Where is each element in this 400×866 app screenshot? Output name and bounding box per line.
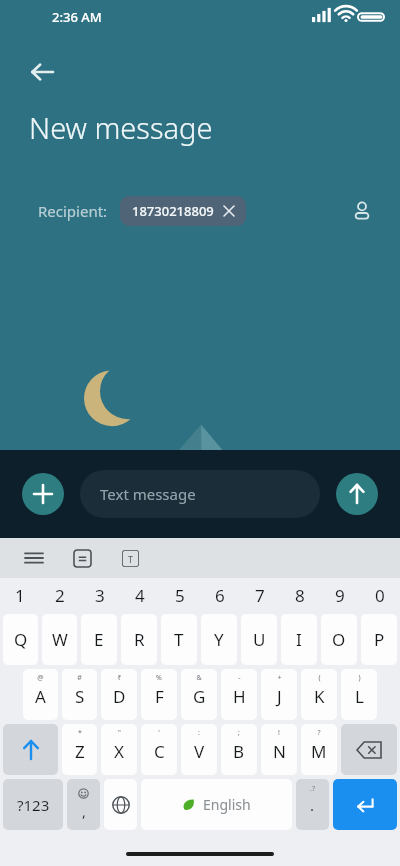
staticText: A xyxy=(35,685,46,708)
button[interactable]: U xyxy=(241,614,277,665)
button[interactable]: Text message xyxy=(80,470,320,518)
staticText: ; xyxy=(238,728,240,738)
staticText: ₹ xyxy=(117,673,122,683)
staticText: * xyxy=(78,728,82,738)
staticText: C xyxy=(154,740,165,763)
staticText: Q xyxy=(14,628,28,651)
staticText: Z xyxy=(75,740,85,763)
staticText: 0 xyxy=(375,584,385,607)
button[interactable]: Send xyxy=(336,473,378,515)
button[interactable]: O xyxy=(321,614,357,665)
staticText: 18730218809 xyxy=(132,202,214,220)
button[interactable]: E xyxy=(81,614,117,665)
button[interactable]: - xyxy=(221,669,257,720)
button[interactable]: P xyxy=(361,614,397,665)
staticText: J xyxy=(277,685,282,708)
button[interactable]: Back xyxy=(20,50,64,94)
staticText: New message xyxy=(29,108,213,147)
button[interactable]: Y xyxy=(201,614,237,665)
staticText: - xyxy=(238,673,241,683)
button[interactable]: R xyxy=(121,614,157,665)
button[interactable]: " xyxy=(101,724,137,775)
staticText: Y xyxy=(214,628,224,651)
button[interactable]: W xyxy=(42,614,77,665)
button[interactable]: 8 xyxy=(280,578,320,612)
button[interactable]: % xyxy=(141,669,177,720)
staticText: ' xyxy=(158,728,160,738)
button[interactable]: 7 xyxy=(240,578,280,612)
button[interactable]: 18730218809 xyxy=(120,196,246,226)
button[interactable]: Shift xyxy=(3,724,58,775)
button[interactable]: Backspace xyxy=(341,724,397,775)
staticText: English xyxy=(203,795,251,814)
staticText: Text message xyxy=(100,484,196,504)
staticText: T xyxy=(128,553,134,565)
staticText: 2 xyxy=(55,584,65,607)
button[interactable]: Menu xyxy=(18,542,50,574)
button[interactable]: Pick contact xyxy=(342,191,382,231)
button[interactable]: & xyxy=(181,669,217,720)
staticText: ? xyxy=(317,728,321,738)
staticText: : xyxy=(198,728,200,738)
staticText: ! xyxy=(278,728,280,738)
staticText: H xyxy=(233,685,246,708)
button[interactable]: ) xyxy=(341,669,377,720)
button[interactable]: ? xyxy=(301,724,337,775)
button[interactable]: # xyxy=(62,669,97,720)
button[interactable]: Enter xyxy=(333,779,397,830)
button[interactable]: 2 xyxy=(40,578,80,612)
staticText: . xyxy=(310,795,315,815)
button[interactable]: Text format xyxy=(114,542,146,574)
button[interactable]: 3 xyxy=(80,578,120,612)
staticText: W xyxy=(52,628,68,651)
button[interactable]: @ xyxy=(23,669,58,720)
button[interactable]: ₹ xyxy=(101,669,137,720)
staticText: , xyxy=(82,802,86,821)
button[interactable]: 4 xyxy=(120,578,160,612)
staticText: P xyxy=(374,628,385,651)
button[interactable]: ' xyxy=(141,724,177,775)
staticText: D xyxy=(113,685,126,708)
staticText: M xyxy=(311,740,327,763)
staticText: 3 xyxy=(95,584,105,607)
button[interactable]: T xyxy=(161,614,197,665)
button[interactable]: 6 xyxy=(200,578,240,612)
staticText: & xyxy=(196,673,202,683)
staticText: 5 xyxy=(175,584,185,607)
staticText: K xyxy=(314,685,325,708)
staticText: 7 xyxy=(255,584,265,607)
staticText: T xyxy=(174,628,184,651)
button[interactable]: ( xyxy=(301,669,337,720)
staticText: # xyxy=(77,673,82,683)
button[interactable]: * xyxy=(62,724,97,775)
button[interactable]: ?123 xyxy=(3,779,63,830)
button[interactable]: I xyxy=(281,614,317,665)
staticText: 8 xyxy=(295,584,305,607)
button[interactable]: ! xyxy=(261,724,297,775)
button[interactable]: Q xyxy=(3,614,38,665)
staticText: 2:36 AM xyxy=(52,8,102,26)
button[interactable]: 9 xyxy=(320,578,360,612)
staticText: O xyxy=(332,628,346,651)
staticText: N xyxy=(273,740,286,763)
staticText: U xyxy=(253,628,266,651)
button[interactable]: .? xyxy=(296,779,329,830)
button[interactable]: English xyxy=(141,779,292,830)
button[interactable]: 5 xyxy=(160,578,200,612)
button[interactable]: Change language xyxy=(104,779,137,830)
button[interactable]: Clipboard xyxy=(66,542,98,574)
button[interactable]: 0 xyxy=(360,578,400,612)
staticText: ) xyxy=(358,673,361,683)
staticText: Recipient: xyxy=(38,201,108,221)
staticText: 4 xyxy=(135,584,145,607)
button[interactable]: + xyxy=(261,669,297,720)
button[interactable]: : xyxy=(181,724,217,775)
button[interactable]: Add attachment xyxy=(22,473,64,515)
button[interactable]: ; xyxy=(221,724,257,775)
staticText: 9 xyxy=(335,584,345,607)
button[interactable]: 1 xyxy=(0,578,40,612)
button[interactable]: Emoji and comma xyxy=(67,779,100,830)
staticText: R xyxy=(134,628,145,651)
staticText: ?123 xyxy=(17,795,50,815)
staticText: S xyxy=(75,685,85,708)
